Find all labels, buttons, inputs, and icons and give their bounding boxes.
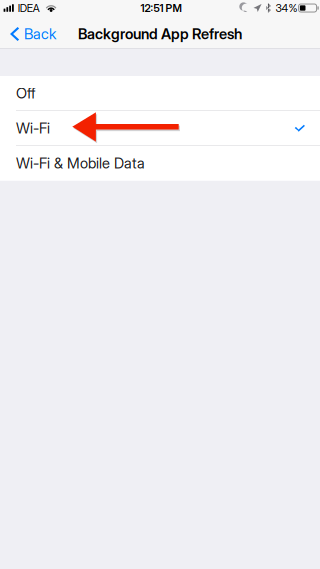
staticText: Wi-Fi & Mobile Data [16,154,145,172]
button[interactable]: Wi-Fi [0,111,320,145]
staticText: 12:51 PM [140,1,181,14]
button[interactable]: Off [0,76,320,110]
staticText: IDEA [18,1,40,14]
staticText: Wi-Fi [16,119,50,137]
button[interactable]: Back [0,20,64,48]
button[interactable]: Wi-Fi & Mobile Data [0,146,320,180]
staticText: 34% [275,1,297,14]
staticText: Off [16,84,35,102]
staticText: Background App Refresh [78,25,242,43]
staticText: Back [24,25,56,43]
